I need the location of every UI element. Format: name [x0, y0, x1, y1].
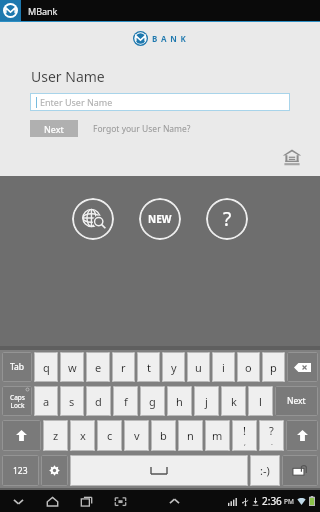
button[interactable]: What's new	[139, 198, 181, 240]
button[interactable]: j	[194, 386, 219, 416]
staticText: u	[195, 360, 202, 375]
button[interactable]: Keyboard settings	[41, 455, 68, 486]
button[interactable]: w	[60, 352, 84, 382]
button[interactable]: a	[34, 386, 58, 416]
button[interactable]: f	[113, 386, 138, 416]
button[interactable]: Home	[42, 491, 62, 511]
staticText: Forgot your User Name?	[93, 123, 191, 135]
button[interactable]: Shift	[2, 420, 41, 451]
staticText: 2:36	[262, 494, 282, 508]
button[interactable]: v	[124, 420, 149, 451]
staticText: ?	[269, 423, 274, 438]
staticText: w	[68, 360, 77, 375]
button[interactable]: l	[248, 386, 273, 416]
button[interactable]: n	[178, 420, 203, 451]
button[interactable]: i	[212, 352, 235, 382]
staticText: Next	[44, 123, 64, 135]
staticText: NEW	[148, 212, 172, 226]
staticText: Next	[287, 395, 306, 407]
staticText: MBank	[28, 5, 58, 17]
button[interactable]: d	[86, 386, 111, 416]
staticText: b	[160, 428, 167, 443]
staticText: z	[53, 428, 59, 443]
staticText: ?	[223, 206, 232, 232]
staticText: User Name	[31, 67, 105, 86]
button[interactable]: Attach	[282, 455, 318, 486]
button[interactable]: k	[221, 386, 246, 416]
staticText: m	[212, 428, 223, 443]
button[interactable]: u	[187, 352, 210, 382]
button[interactable]: ?	[259, 420, 284, 451]
staticText: s	[69, 394, 75, 409]
button[interactable]: z	[43, 420, 68, 451]
staticText: t	[147, 360, 151, 375]
button[interactable]: e	[86, 352, 110, 382]
staticText: 123	[13, 465, 28, 477]
button[interactable]: b	[151, 420, 176, 451]
staticText: x	[80, 428, 86, 443]
button[interactable]: h	[167, 386, 192, 416]
button[interactable]: Equal Housing Lender	[282, 148, 302, 166]
button[interactable]: p	[262, 352, 285, 382]
button[interactable]: Find a location	[72, 198, 114, 240]
button[interactable]: t	[137, 352, 160, 382]
button[interactable]: x	[70, 420, 95, 451]
button[interactable]: y	[162, 352, 185, 382]
button[interactable]: Back	[8, 491, 28, 511]
staticText: a	[43, 394, 50, 409]
button[interactable]: Help	[206, 198, 248, 240]
staticText: g	[149, 394, 156, 409]
staticText: o	[245, 360, 252, 375]
button[interactable]: Enter User Name	[30, 93, 290, 111]
staticText: r	[121, 360, 126, 375]
staticText: p	[270, 360, 277, 375]
staticText: e	[95, 360, 102, 375]
button[interactable]: o	[237, 352, 260, 382]
button[interactable]: q	[34, 352, 58, 382]
button[interactable]: r	[112, 352, 135, 382]
button[interactable]: 123	[2, 455, 39, 486]
staticText: Tab	[10, 361, 25, 373]
staticText: ,	[244, 438, 246, 448]
staticText: v	[134, 428, 140, 443]
button[interactable]: Forgot your User Name?	[91, 121, 193, 137]
button[interactable]: MBank app icon	[0, 0, 21, 21]
staticText: c	[107, 428, 113, 443]
button[interactable]: Tab	[2, 352, 32, 382]
button[interactable]: c	[97, 420, 122, 451]
staticText: f	[124, 394, 128, 409]
button[interactable]: Space	[70, 455, 248, 486]
button[interactable]: Next	[30, 120, 78, 137]
staticText: B A N K	[152, 33, 187, 44]
button[interactable]: !	[232, 420, 257, 451]
staticText: Enter User Name	[40, 96, 113, 108]
button[interactable]: Expand	[164, 491, 184, 511]
button[interactable]: :-)	[250, 455, 280, 486]
staticText: i	[222, 360, 225, 375]
staticText: k	[231, 394, 237, 409]
button[interactable]: Recent apps	[76, 491, 96, 511]
staticText: j	[205, 394, 208, 409]
button[interactable]: Next	[275, 386, 318, 416]
button[interactable]: Caps Lock	[2, 386, 32, 416]
button[interactable]: Shift	[286, 420, 318, 451]
staticText: :-)	[260, 463, 270, 478]
button[interactable]: Screenshot	[110, 491, 130, 511]
staticText: d	[95, 394, 102, 409]
staticText: y	[171, 360, 177, 375]
staticText: !	[243, 423, 246, 438]
staticText: Caps Lock	[10, 393, 25, 410]
staticText: .	[271, 438, 273, 448]
button[interactable]: g	[140, 386, 165, 416]
staticText: n	[187, 428, 194, 443]
button[interactable]: Backspace	[287, 352, 318, 382]
staticText: h	[176, 394, 183, 409]
button[interactable]: m	[205, 420, 230, 451]
staticText: PM	[284, 497, 294, 506]
button[interactable]: s	[60, 386, 84, 416]
staticText: l	[259, 394, 262, 409]
staticText: q	[43, 360, 50, 375]
